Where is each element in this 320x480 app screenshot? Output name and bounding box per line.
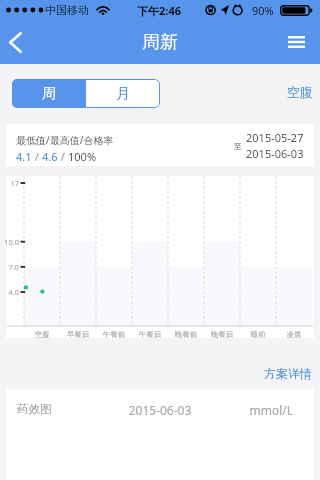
staticText: 2015-05-27	[246, 130, 304, 145]
button[interactable]: 月	[86, 79, 160, 108]
button[interactable]: 方案详情	[258, 363, 318, 384]
staticText: 早餐后	[58, 330, 98, 339]
button[interactable]: Back	[0, 20, 36, 64]
staticText: 方案详情	[264, 366, 312, 381]
staticText: 晚餐前	[166, 330, 206, 339]
staticText: /	[58, 149, 68, 164]
staticText: 中国移动	[45, 3, 89, 17]
staticText: 午餐后	[130, 330, 170, 339]
staticText: 晚餐后	[202, 330, 242, 339]
staticText: 药效图	[17, 402, 52, 416]
staticText: 睡前	[238, 330, 278, 339]
staticText: mmol/L	[213, 402, 293, 418]
staticText: 最低值/最高值/合格率	[16, 133, 114, 147]
staticText: 2015-06-03	[246, 146, 304, 161]
staticText: 4.6	[42, 149, 58, 164]
staticText: 至	[234, 141, 242, 151]
staticText: 下午2:46	[137, 3, 181, 18]
button[interactable]: 空腹	[283, 82, 317, 102]
staticText: 100%	[68, 149, 97, 164]
staticText: 4.1	[16, 149, 32, 164]
button[interactable]: 周	[12, 79, 86, 108]
staticText: 2015-06-03	[80, 402, 240, 418]
staticText: 周	[42, 85, 56, 103]
staticText: 7.0	[0, 262, 19, 272]
button[interactable]: 药效图	[6, 389, 314, 480]
staticText: 凌晨	[274, 330, 314, 339]
staticText: /	[32, 149, 42, 164]
staticText: 空腹	[287, 84, 313, 100]
button[interactable]: Menu	[284, 20, 320, 64]
staticText: 17	[0, 178, 19, 188]
staticText: 空腹	[22, 330, 62, 339]
staticText: 10.0	[0, 237, 19, 247]
staticText: 90%	[252, 3, 274, 18]
staticText: 午餐前	[94, 330, 134, 339]
staticText: 月	[116, 85, 130, 103]
staticText: 周新	[142, 31, 178, 54]
staticText: 4.0	[0, 287, 19, 297]
